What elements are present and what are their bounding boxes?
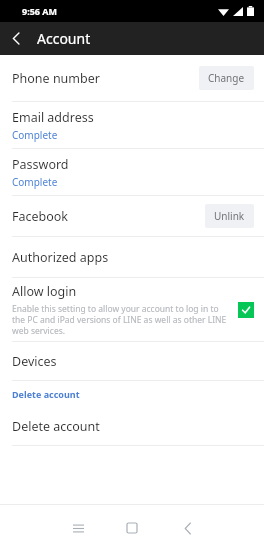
- button[interactable]: Email address: [0, 102, 264, 148]
- button[interactable]: Authorized apps: [0, 237, 264, 277]
- staticText: Account: [37, 29, 91, 48]
- staticText: Password: [12, 156, 69, 173]
- staticText: Email address: [12, 109, 94, 126]
- button[interactable]: Delete account: [0, 407, 264, 445]
- staticText: Authorized apps: [12, 249, 254, 266]
- button[interactable]: Phone number: [0, 55, 264, 101]
- button[interactable]: Facebook: [0, 196, 264, 236]
- button[interactable]: Allow login checkbox, checked: [238, 302, 254, 318]
- staticText: Devices: [12, 353, 254, 370]
- button[interactable]: Devices: [0, 342, 264, 380]
- button[interactable]: Change: [199, 66, 254, 90]
- staticText: Complete: [12, 175, 58, 189]
- button[interactable]: Unlink: [205, 204, 254, 228]
- staticText: Change: [208, 71, 245, 85]
- button[interactable]: Password: [0, 149, 264, 195]
- staticText: Delete account: [12, 418, 254, 435]
- staticText: Enable this setting to allow your accoun…: [12, 303, 230, 336]
- staticText: Facebook: [12, 208, 205, 225]
- button[interactable]: Allow login: [0, 278, 264, 341]
- staticText: 9:56 AM: [22, 5, 58, 17]
- button[interactable]: Recent apps: [56, 506, 100, 550]
- staticText: Complete: [12, 128, 58, 142]
- button[interactable]: Back: [166, 506, 210, 550]
- staticText: Phone number: [12, 70, 199, 87]
- staticText: Allow login: [12, 283, 77, 300]
- staticText: Unlink: [214, 209, 245, 223]
- button[interactable]: Back: [0, 22, 33, 55]
- staticText: Delete account: [12, 388, 80, 400]
- button[interactable]: Home: [110, 506, 154, 550]
